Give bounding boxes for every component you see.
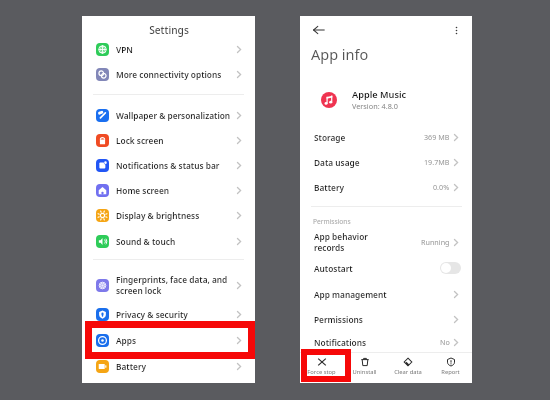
- staticText: Lock screen: [116, 135, 237, 146]
- staticText: Privacy & security: [116, 309, 237, 320]
- staticText: App behavior records: [314, 231, 421, 253]
- staticText: Version: 4.8.0: [352, 101, 398, 111]
- staticText: Apple Music: [352, 88, 407, 100]
- staticText: App info: [311, 44, 369, 64]
- button[interactable]: App management: [300, 282, 472, 306]
- staticText: Permissions: [314, 314, 454, 325]
- button[interactable]: Sound & touch: [82, 229, 255, 253]
- button[interactable]: Data usage: [300, 150, 472, 174]
- staticText: Storage: [314, 132, 424, 143]
- staticText: Clear data: [394, 368, 422, 376]
- button[interactable]: Display & brightness: [82, 203, 255, 227]
- button[interactable]: Uninstall: [343, 353, 386, 376]
- staticText: Permissions: [313, 217, 351, 226]
- staticText: Report: [441, 368, 460, 376]
- button[interactable]: Autostart: [300, 256, 472, 280]
- staticText: 369 MB: [424, 132, 450, 142]
- staticText: 0.0%: [433, 182, 450, 192]
- button[interactable]: App behavior records: [300, 227, 472, 257]
- staticText: Notifications: [314, 337, 440, 348]
- button[interactable]: Permissions: [300, 307, 472, 331]
- button[interactable]: Fingerprints, face data, and screen lock: [82, 273, 255, 297]
- button[interactable]: Lock screen: [82, 128, 255, 152]
- button[interactable]: Report: [429, 353, 472, 376]
- button[interactable]: Wallpaper & personalization: [82, 103, 255, 127]
- staticText: Notifications & status bar: [116, 160, 237, 171]
- staticText: Wallpaper & personalization: [116, 110, 237, 121]
- button[interactable]: More options: [447, 21, 465, 39]
- staticText: Uninstall: [352, 368, 377, 376]
- staticText: Apps: [116, 335, 237, 346]
- button[interactable]: Storage: [300, 125, 472, 149]
- button[interactable]: Notifications: [300, 330, 472, 354]
- button[interactable]: Clear data: [386, 353, 429, 376]
- staticText: More connectivity options: [116, 69, 237, 80]
- button[interactable]: VPN: [82, 37, 255, 61]
- button[interactable]: Back: [310, 21, 328, 39]
- staticText: Settings: [149, 23, 189, 37]
- staticText: App management: [314, 289, 454, 300]
- staticText: Battery: [116, 361, 237, 372]
- staticText: Battery: [314, 182, 433, 193]
- button[interactable]: Battery: [82, 354, 255, 378]
- staticText: Display & brightness: [116, 210, 237, 221]
- button[interactable]: Home screen: [82, 178, 255, 202]
- staticText: VPN: [116, 44, 237, 55]
- button[interactable]: Force stop: [300, 353, 343, 376]
- staticText: Running: [421, 237, 450, 247]
- staticText: Fingerprints, face data, and screen lock: [116, 274, 237, 296]
- button[interactable]: Apps: [82, 328, 255, 352]
- staticText: Force stop: [307, 368, 336, 376]
- staticText: Home screen: [116, 185, 237, 196]
- staticText: Autostart: [314, 263, 437, 274]
- staticText: No: [440, 337, 450, 347]
- button[interactable]: Battery: [300, 175, 472, 199]
- button[interactable]: Notifications & status bar: [82, 153, 255, 177]
- staticText: Sound & touch: [116, 236, 237, 247]
- button[interactable]: Privacy & security: [82, 302, 255, 326]
- button[interactable]: More connectivity options: [82, 62, 255, 86]
- staticText: Data usage: [314, 157, 424, 168]
- staticText: 19.7MB: [424, 157, 450, 167]
